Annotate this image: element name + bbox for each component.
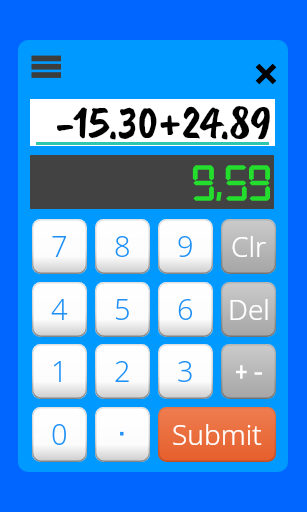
staticText: 9 xyxy=(177,226,194,265)
staticText: 0 xyxy=(51,414,68,453)
staticText: Clr xyxy=(231,227,266,265)
staticText: -15.30+24.89 xyxy=(41,94,286,141)
button[interactable]: Close xyxy=(249,57,283,91)
staticText: Submit xyxy=(172,415,262,453)
button[interactable]: 4 xyxy=(32,282,87,337)
button[interactable]: 2 xyxy=(95,344,150,399)
staticText: 6 xyxy=(177,289,194,328)
button[interactable]: Clr xyxy=(221,219,276,274)
staticText: 5 xyxy=(114,289,131,328)
button[interactable]: 5 xyxy=(95,282,150,337)
staticText: 1 xyxy=(51,351,68,390)
staticText: 7 xyxy=(51,226,68,265)
staticText: 4 xyxy=(51,289,68,328)
button[interactable]: 0 xyxy=(32,407,87,462)
button[interactable]: Menu xyxy=(25,45,71,85)
button[interactable]: 1 xyxy=(32,344,87,399)
staticText: Del xyxy=(228,290,270,328)
button[interactable]: 6 xyxy=(158,282,213,337)
button[interactable] xyxy=(221,344,276,399)
button[interactable]: 9 xyxy=(158,219,213,274)
staticText: 8 xyxy=(114,226,131,265)
button[interactable] xyxy=(95,407,150,462)
button[interactable]: Submit xyxy=(158,407,276,462)
button[interactable]: Del xyxy=(221,282,276,337)
staticText: 3 xyxy=(177,351,194,390)
button[interactable]: 8 xyxy=(95,219,150,274)
button[interactable]: 7 xyxy=(32,219,87,274)
staticText: 2 xyxy=(114,351,131,390)
button[interactable]: 3 xyxy=(158,344,213,399)
